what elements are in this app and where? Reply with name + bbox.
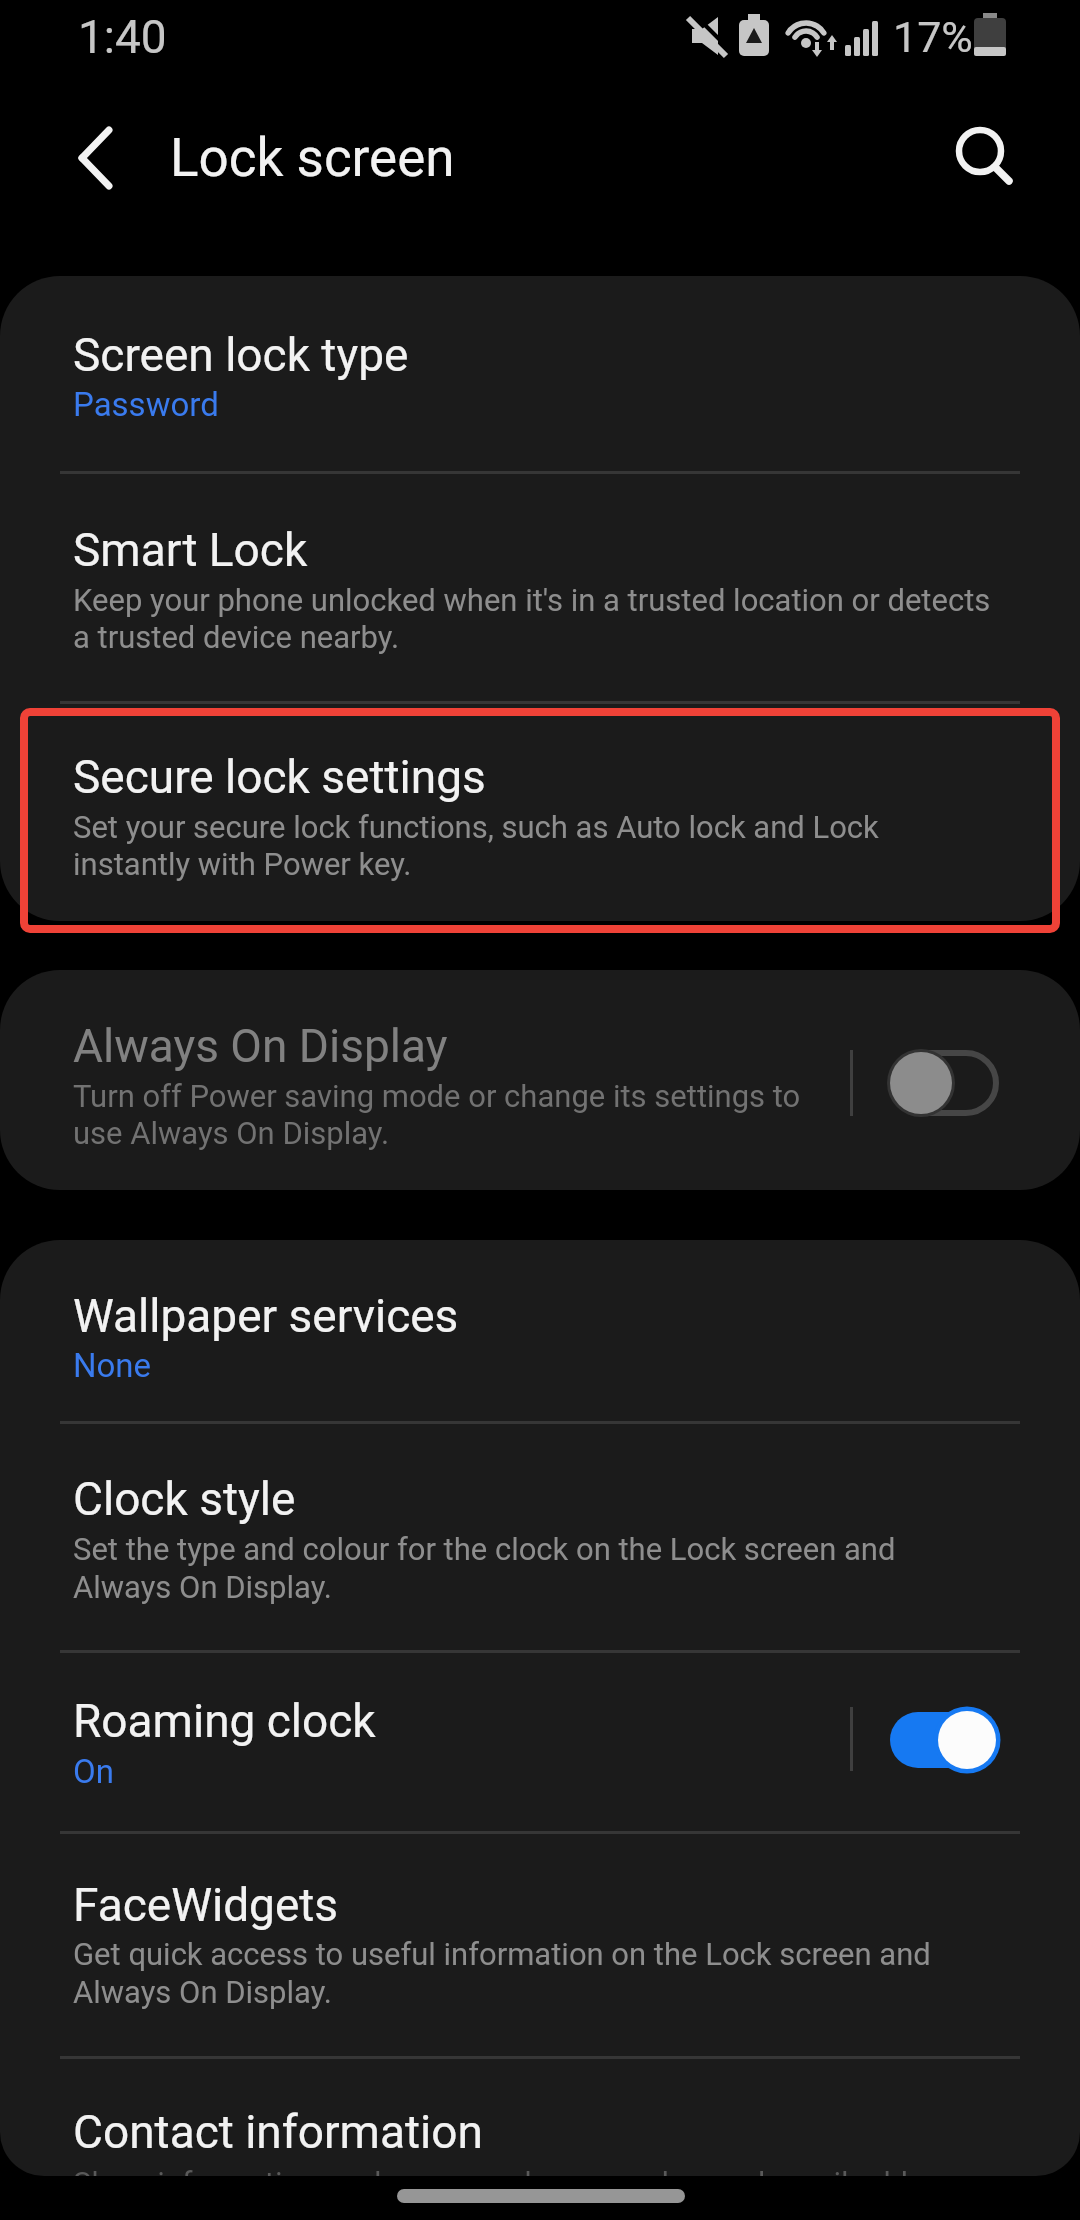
button[interactable]	[940, 111, 1030, 201]
staticText: None	[73, 1346, 152, 1385]
staticText: instantly with Power key.	[73, 846, 412, 882]
staticText: 17%	[893, 12, 973, 62]
staticText: Wallpaper services	[73, 1289, 459, 1343]
staticText: Clock style	[73, 1472, 296, 1526]
staticText: Contact information	[73, 2105, 483, 2159]
staticText: Always On Display.	[73, 1569, 332, 1605]
staticText: On	[73, 1752, 114, 1791]
staticText: Screen lock type	[73, 328, 409, 382]
button[interactable]	[0, 1832, 1080, 2057]
staticText: Roaming clock	[73, 1694, 376, 1748]
staticText: Turn off Power saving mode or change its…	[73, 1078, 801, 1114]
staticText: Set the type and colour for the clock on…	[73, 1531, 896, 1567]
staticText: Smart Lock	[73, 523, 308, 577]
button[interactable]	[884, 1704, 1006, 1776]
staticText: FaceWidgets	[73, 1878, 339, 1932]
button[interactable]	[0, 276, 1080, 472]
button[interactable]	[55, 118, 135, 198]
staticText: Lock screen	[170, 127, 455, 189]
staticText: Keep your phone unlocked when it's in a …	[73, 582, 991, 618]
staticText: a trusted device nearby.	[73, 619, 400, 655]
staticText: Always On Display.	[73, 1974, 332, 2010]
staticText: use Always On Display.	[73, 1115, 390, 1151]
button[interactable]	[0, 2057, 1080, 2176]
button[interactable]	[397, 2189, 685, 2203]
staticText: Set your secure lock functions, such as …	[73, 809, 879, 845]
staticText: Secure lock settings	[73, 750, 486, 804]
staticText: Get quick access to useful information o…	[73, 1936, 931, 1972]
button[interactable]	[0, 1240, 1080, 1422]
staticText: 1:40	[78, 10, 167, 64]
button[interactable]	[0, 702, 1080, 921]
button[interactable]	[0, 1651, 1080, 1832]
staticText: Always On Display	[73, 1019, 448, 1073]
button[interactable]: Always On Display	[0, 970, 1080, 1190]
staticText: Password	[73, 385, 219, 424]
button[interactable]	[0, 1422, 1080, 1651]
staticText: Show information such as your phone numb…	[73, 2165, 967, 2176]
button[interactable]	[884, 1047, 1006, 1119]
button[interactable]	[0, 472, 1080, 702]
